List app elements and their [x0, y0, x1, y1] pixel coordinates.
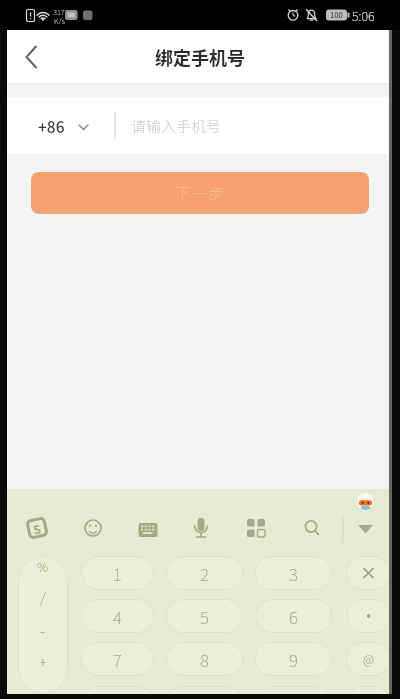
- staticText: 9: [289, 647, 298, 672]
- button[interactable]: 请输入手机号: [123, 97, 390, 154]
- button[interactable]: [346, 556, 391, 590]
- button[interactable]: [236, 508, 276, 548]
- button[interactable]: [166, 686, 243, 699]
- button[interactable]: 4: [81, 599, 154, 633]
- button[interactable]: 3: [255, 556, 332, 590]
- staticText: 100: [330, 9, 343, 20]
- button[interactable]: [72, 508, 112, 548]
- staticText: @: [363, 650, 375, 668]
- staticText: 下一步: [175, 182, 226, 204]
- staticText: 3: [289, 561, 298, 586]
- staticText: 1: [113, 561, 122, 586]
- staticText: /: [40, 587, 46, 607]
- button[interactable]: [181, 508, 221, 548]
- staticText: 2: [200, 561, 209, 586]
- button[interactable]: 9: [255, 642, 332, 676]
- staticText: 8: [200, 647, 209, 672]
- button[interactable]: [346, 686, 391, 699]
- staticText: 6: [289, 604, 298, 629]
- button[interactable]: [10, 36, 54, 78]
- button[interactable]: 1: [81, 556, 154, 590]
- button[interactable]: [346, 642, 391, 676]
- button[interactable]: [357, 493, 374, 510]
- button[interactable]: +86: [25, 105, 100, 146]
- staticText: 4: [113, 604, 122, 629]
- staticText: 5:06: [352, 6, 375, 24]
- staticText: %: [37, 557, 49, 575]
- staticText: +: [39, 651, 47, 673]
- button[interactable]: [127, 508, 167, 548]
- button[interactable]: 2: [166, 556, 243, 590]
- button[interactable]: 5: [166, 599, 243, 633]
- staticText: 7: [113, 647, 122, 672]
- button[interactable]: [81, 686, 154, 699]
- staticText: 请输入手机号: [131, 115, 222, 137]
- staticText: S: [31, 519, 43, 538]
- button[interactable]: [17, 508, 57, 548]
- button[interactable]: [255, 686, 332, 699]
- button[interactable]: 下一步: [31, 172, 369, 214]
- staticText: 5: [200, 604, 209, 629]
- staticText: 绑定手机号: [155, 44, 245, 70]
- button[interactable]: 8: [166, 642, 243, 676]
- button[interactable]: [345, 508, 385, 548]
- button[interactable]: [346, 599, 391, 633]
- staticText: +86: [38, 115, 65, 137]
- button[interactable]: [18, 556, 68, 694]
- staticText: K/s: [54, 15, 65, 24]
- staticText: 317: [53, 6, 65, 15]
- button[interactable]: [291, 508, 331, 548]
- staticText: -: [40, 618, 46, 640]
- button[interactable]: 6: [255, 599, 332, 633]
- button[interactable]: 7: [81, 642, 154, 676]
